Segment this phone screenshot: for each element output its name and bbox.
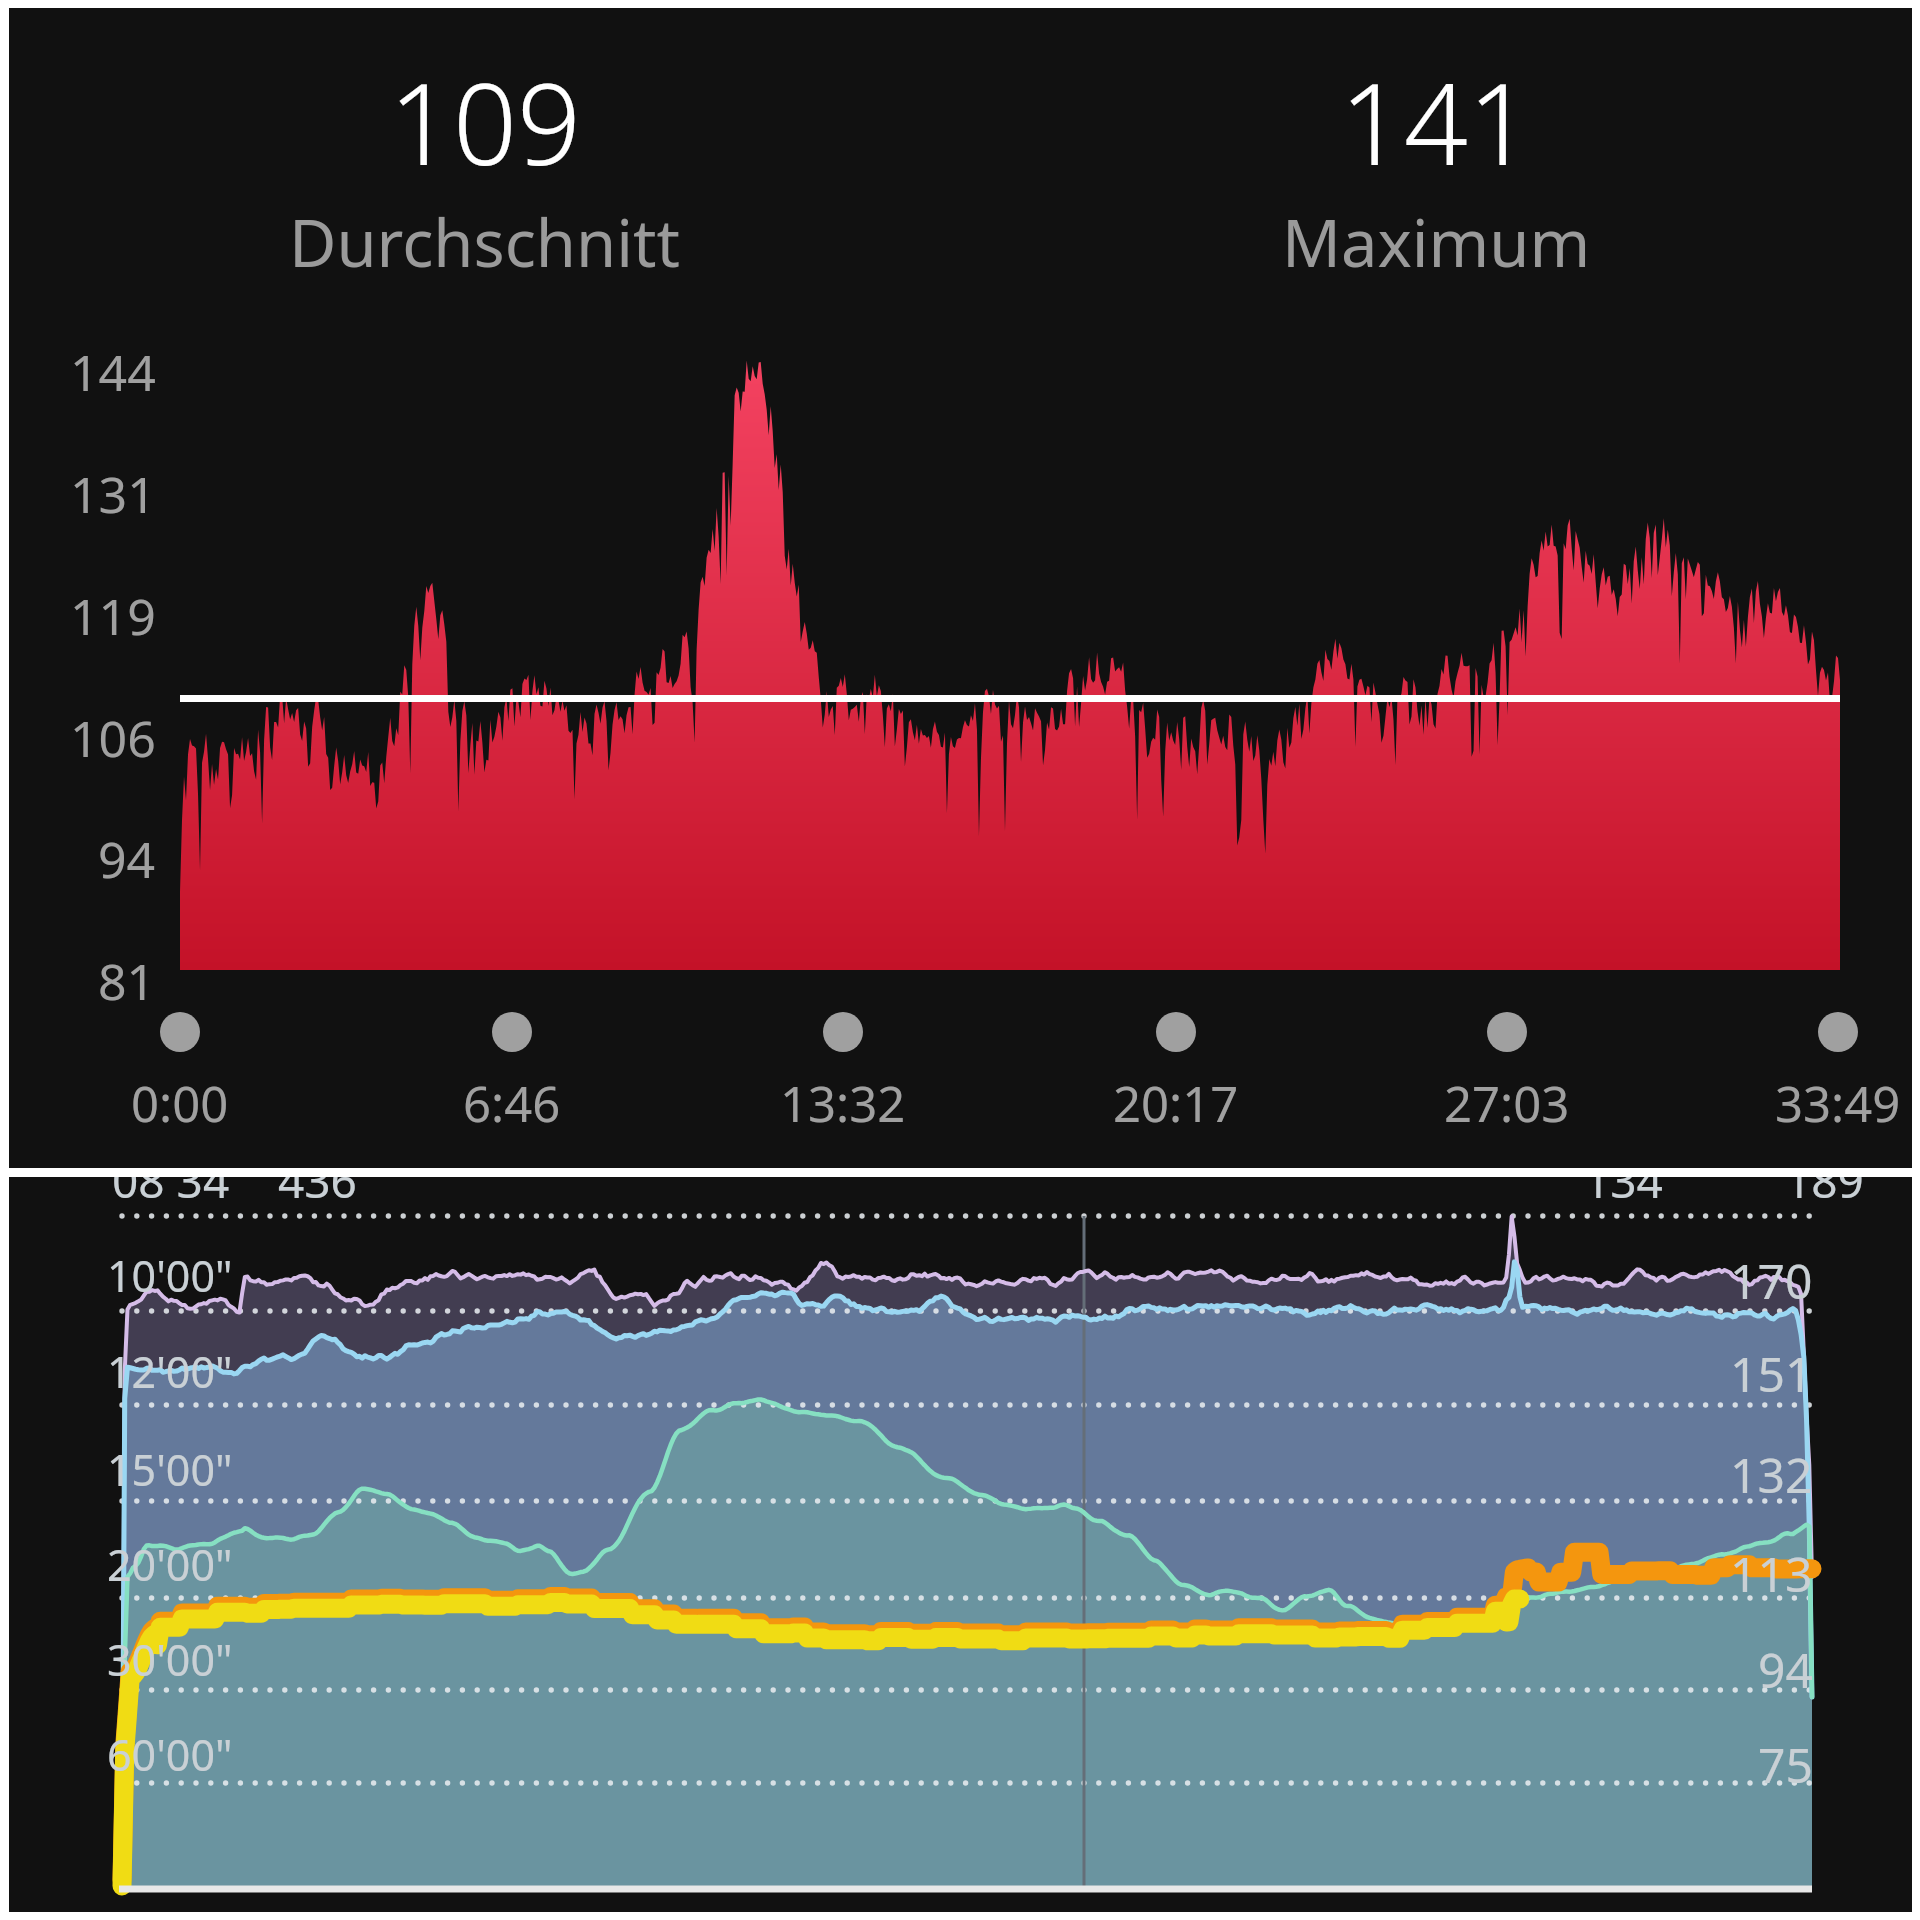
staticText: 30'00" [107,1630,233,1689]
staticText: 33:49 [1775,1070,1901,1137]
staticText: 134 [1584,1177,1663,1212]
staticText: 113 [1730,1541,1813,1606]
staticText: 109 [389,45,581,198]
button[interactable]: 109 [9,8,1912,1168]
staticText: 94 [98,825,156,893]
staticText: 170 [1730,1248,1813,1313]
staticText: 132 [1730,1442,1813,1507]
staticText: 144 [70,338,156,406]
button[interactable]: 08 34 [9,1177,1912,1912]
staticText: 20'00" [107,1535,233,1594]
staticText: 08 34 [112,1177,230,1212]
staticText: 6:46 [463,1070,561,1137]
staticText: 119 [70,582,156,650]
staticText: 81 [98,947,156,1015]
button[interactable]: 141 [960,8,1912,308]
staticText: 94 [1758,1637,1813,1702]
staticText: 10'00" [107,1246,233,1305]
staticText: 151 [1730,1341,1813,1406]
staticText: 75 [1758,1732,1813,1797]
staticText: 27:03 [1444,1070,1570,1137]
staticText: 20:17 [1113,1070,1239,1137]
staticText: 12'00" [107,1342,233,1401]
staticText: 0:00 [131,1070,229,1137]
staticText: Maximum [1282,198,1591,287]
staticText: 15'00" [107,1440,233,1499]
staticText: 141 [1340,45,1532,198]
staticText: 60'00" [107,1725,233,1784]
button[interactable]: 109 [9,8,960,308]
staticText: Durchschnitt [289,198,680,287]
staticText: 436 [278,1177,357,1212]
staticText: 106 [70,704,156,772]
staticText: 13:32 [780,1070,906,1137]
staticText: 131 [70,460,156,528]
staticText: 189 [1785,1177,1864,1212]
